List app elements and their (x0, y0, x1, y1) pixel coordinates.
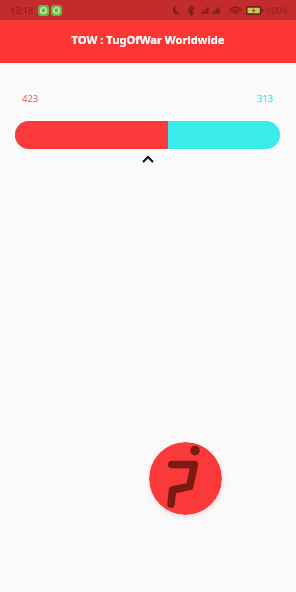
staticText: 313 (257, 92, 274, 105)
staticText: 100% (266, 4, 289, 16)
button[interactable]: Play tug of war (149, 442, 222, 515)
staticText: 13:18 (10, 4, 34, 16)
button[interactable]: Expand details (133, 152, 163, 166)
staticText: 423 (22, 92, 39, 105)
button[interactable] (15, 121, 280, 149)
staticText: TOW : TugOfWar Worldwide (71, 32, 225, 47)
